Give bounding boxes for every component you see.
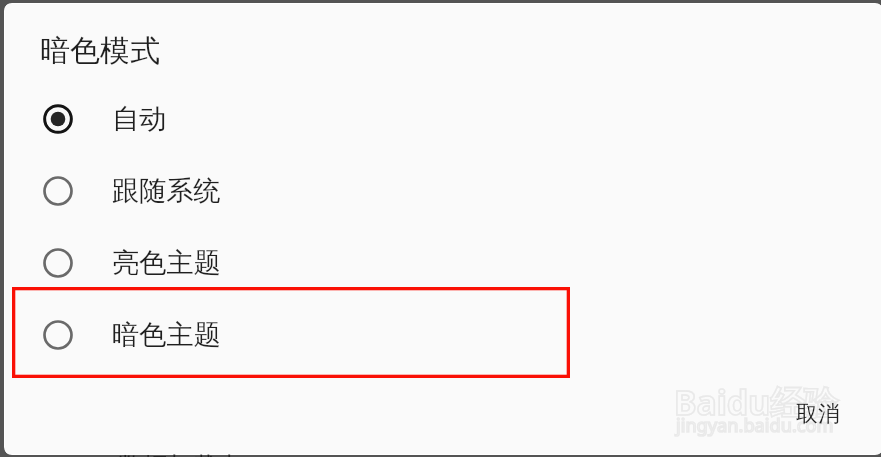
button[interactable]: 跟随系统 bbox=[4, 155, 881, 227]
staticText: 亮色主题 bbox=[112, 246, 221, 280]
staticText: 跟随系统 bbox=[112, 174, 221, 208]
button[interactable]: 亮色主题 bbox=[4, 227, 881, 299]
staticText: Baidu经验 bbox=[674, 379, 838, 425]
staticText: 暗色模式 bbox=[40, 32, 160, 70]
button[interactable]: 暗色主题 bbox=[4, 299, 881, 371]
other: Highlighted option 暗色主题 bbox=[12, 287, 570, 378]
staticText: 取消 bbox=[796, 400, 840, 428]
staticText: jingyan.baidu.com bbox=[676, 413, 834, 438]
button[interactable]: 取消 bbox=[778, 392, 858, 436]
staticText: 暗色主题 bbox=[112, 318, 221, 352]
staticText: 自动 bbox=[112, 102, 167, 136]
button[interactable]: 自动 bbox=[4, 83, 881, 155]
staticText: 数据加载中 bbox=[118, 451, 243, 457]
